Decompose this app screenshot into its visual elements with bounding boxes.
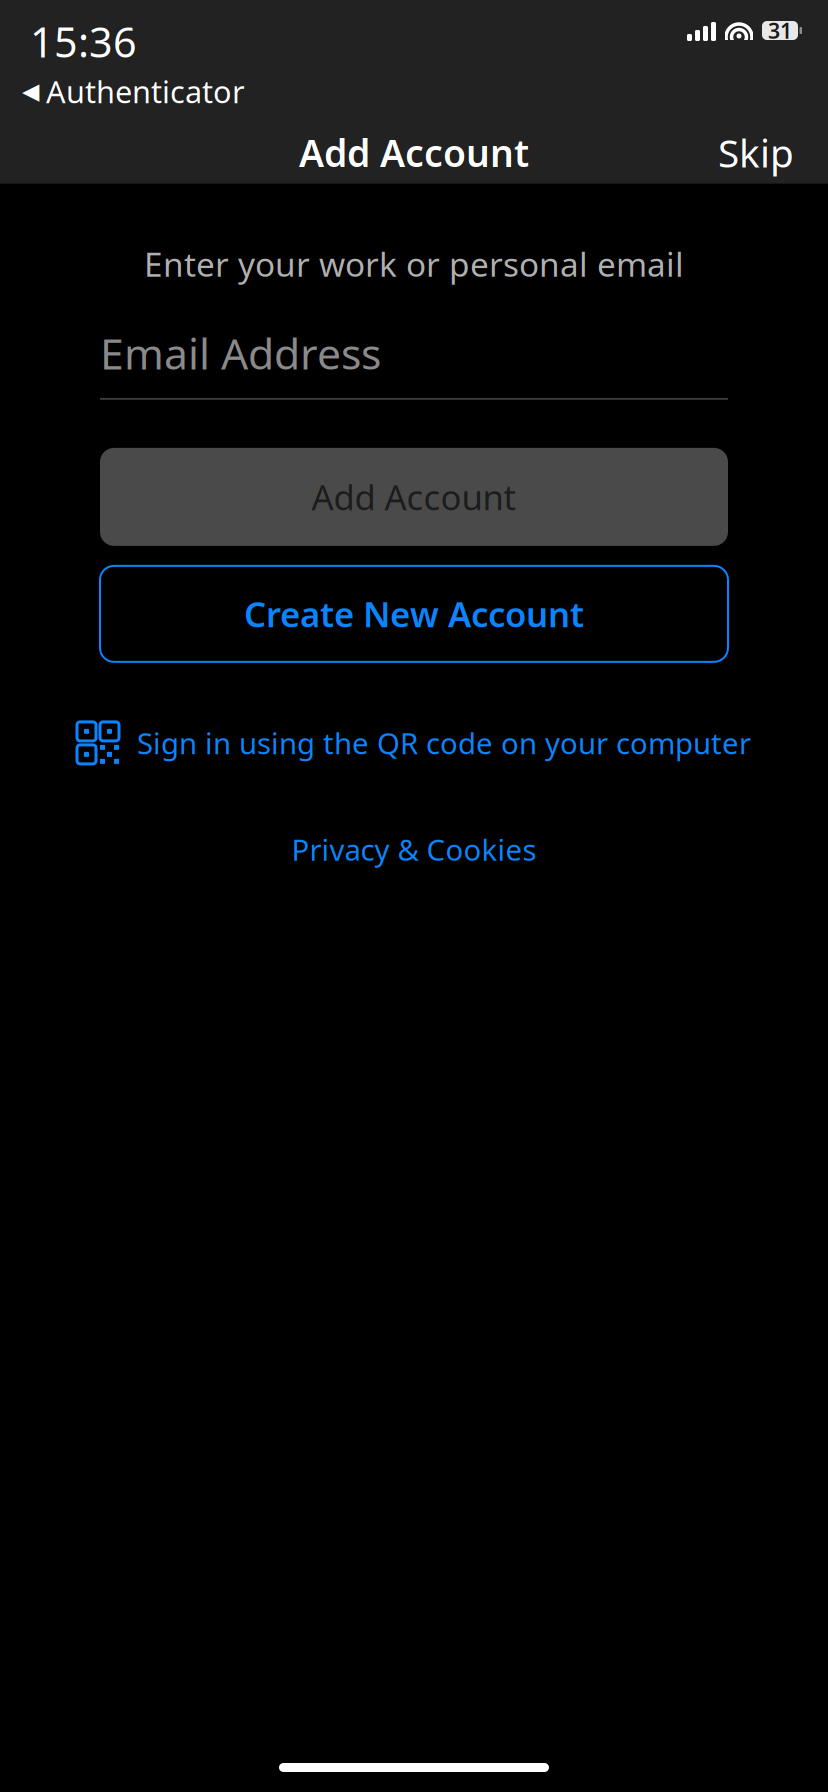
staticText: 31 [768,16,792,45]
button[interactable]: Privacy & Cookies [277,822,550,877]
button[interactable]: Create New Account [100,566,728,662]
staticText: 15:36 [30,14,137,69]
staticText: Email Address [100,324,381,381]
staticText: Create New Account [244,591,584,637]
button[interactable]: Add Account [100,448,728,546]
staticText: Add Account [299,128,529,177]
staticText: Skip [718,127,794,178]
staticText: Enter your work or personal email [144,242,684,286]
button[interactable]: Sign in using the QR code on your comput… [77,712,751,774]
staticText: Add Account [311,474,516,520]
staticText: Privacy & Cookies [291,830,536,869]
staticText: Authenticator [46,71,245,112]
button[interactable]: Skip [708,121,804,184]
staticText: ◀ [22,78,39,104]
staticText: Sign in using the QR code on your comput… [137,723,751,762]
button[interactable]: ◀ [22,71,245,112]
